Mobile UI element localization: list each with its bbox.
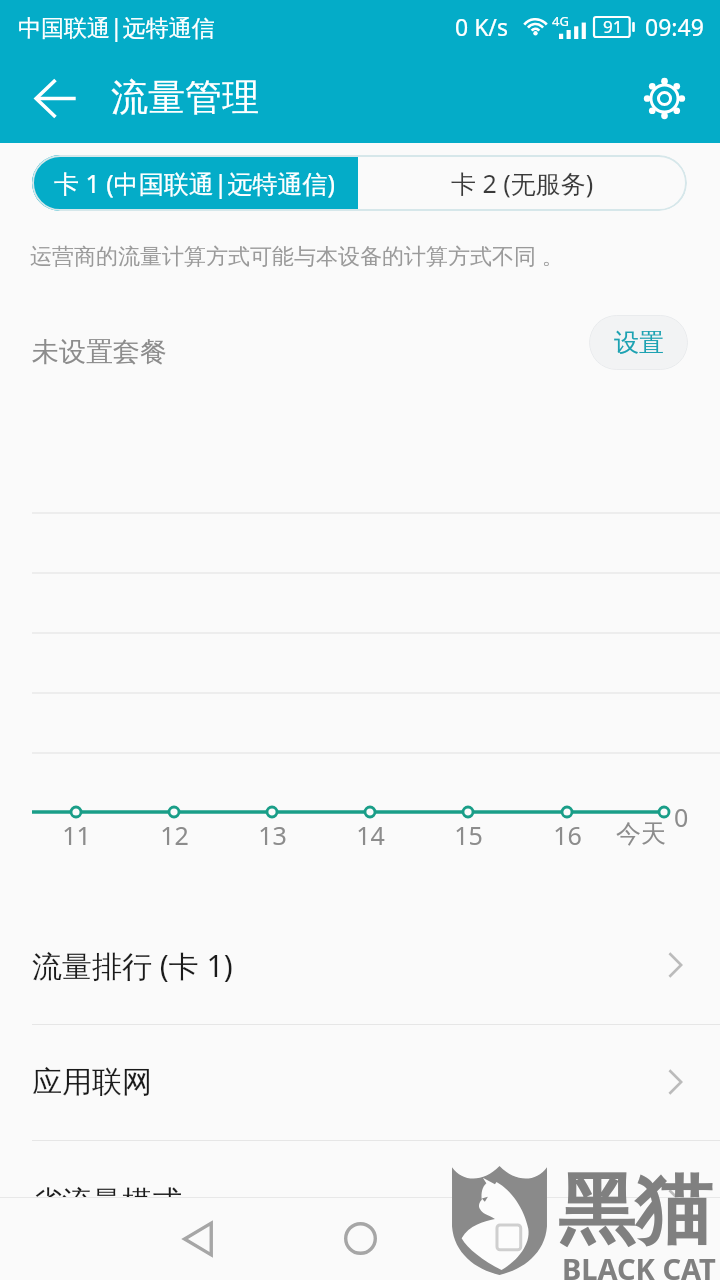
button[interactable]: Home	[318, 1197, 402, 1280]
button[interactable]: 流量排行 (卡 1)	[0, 907, 720, 1023]
staticText: 12	[160, 818, 189, 852]
staticText: 16	[553, 818, 582, 852]
staticText: 卡 2 (无服务)	[451, 166, 594, 200]
button[interactable]: 卡 2 (无服务)	[358, 155, 687, 211]
button[interactable]: 应用联网	[0, 1024, 720, 1140]
staticText: 运营商的流量计算方式可能与本设备的计算方式不同 。	[30, 240, 564, 270]
staticText: 流量排行 (卡 1)	[32, 945, 233, 986]
staticText: 黑猫	[558, 1162, 712, 1259]
staticText: 91	[603, 15, 623, 38]
button[interactable]: 卡 1 (中国联通|远特通信)	[32, 155, 358, 211]
staticText: 今天	[616, 818, 666, 849]
staticText: 4G	[552, 12, 569, 30]
staticText: 0	[674, 800, 689, 834]
button[interactable]: Back	[157, 1197, 241, 1280]
staticText: 未设置套餐	[32, 335, 167, 369]
staticText: 省流量模式	[32, 1183, 182, 1221]
staticText: 卡 1 (中国联通|远特通信)	[54, 166, 336, 200]
staticText: 15	[454, 818, 483, 852]
staticText: 流量管理	[111, 74, 259, 121]
staticText: 设置	[614, 327, 664, 358]
button[interactable]: Settings	[626, 60, 702, 136]
staticText: 中国联通|远特通信	[18, 11, 215, 42]
button[interactable]: 省流量模式	[0, 1144, 720, 1260]
staticText: BLACK CAT	[562, 1249, 716, 1280]
button[interactable]: Recent apps	[475, 1197, 559, 1280]
staticText: 09:49	[645, 11, 704, 42]
staticText: 14	[356, 818, 385, 852]
button[interactable]: 设置	[589, 315, 688, 370]
staticText: 11	[62, 818, 91, 852]
staticText: 0 K/s	[455, 11, 508, 42]
staticText: 应用联网	[32, 1063, 152, 1101]
button[interactable]: Back	[17, 60, 93, 136]
staticText: 13	[258, 818, 287, 852]
